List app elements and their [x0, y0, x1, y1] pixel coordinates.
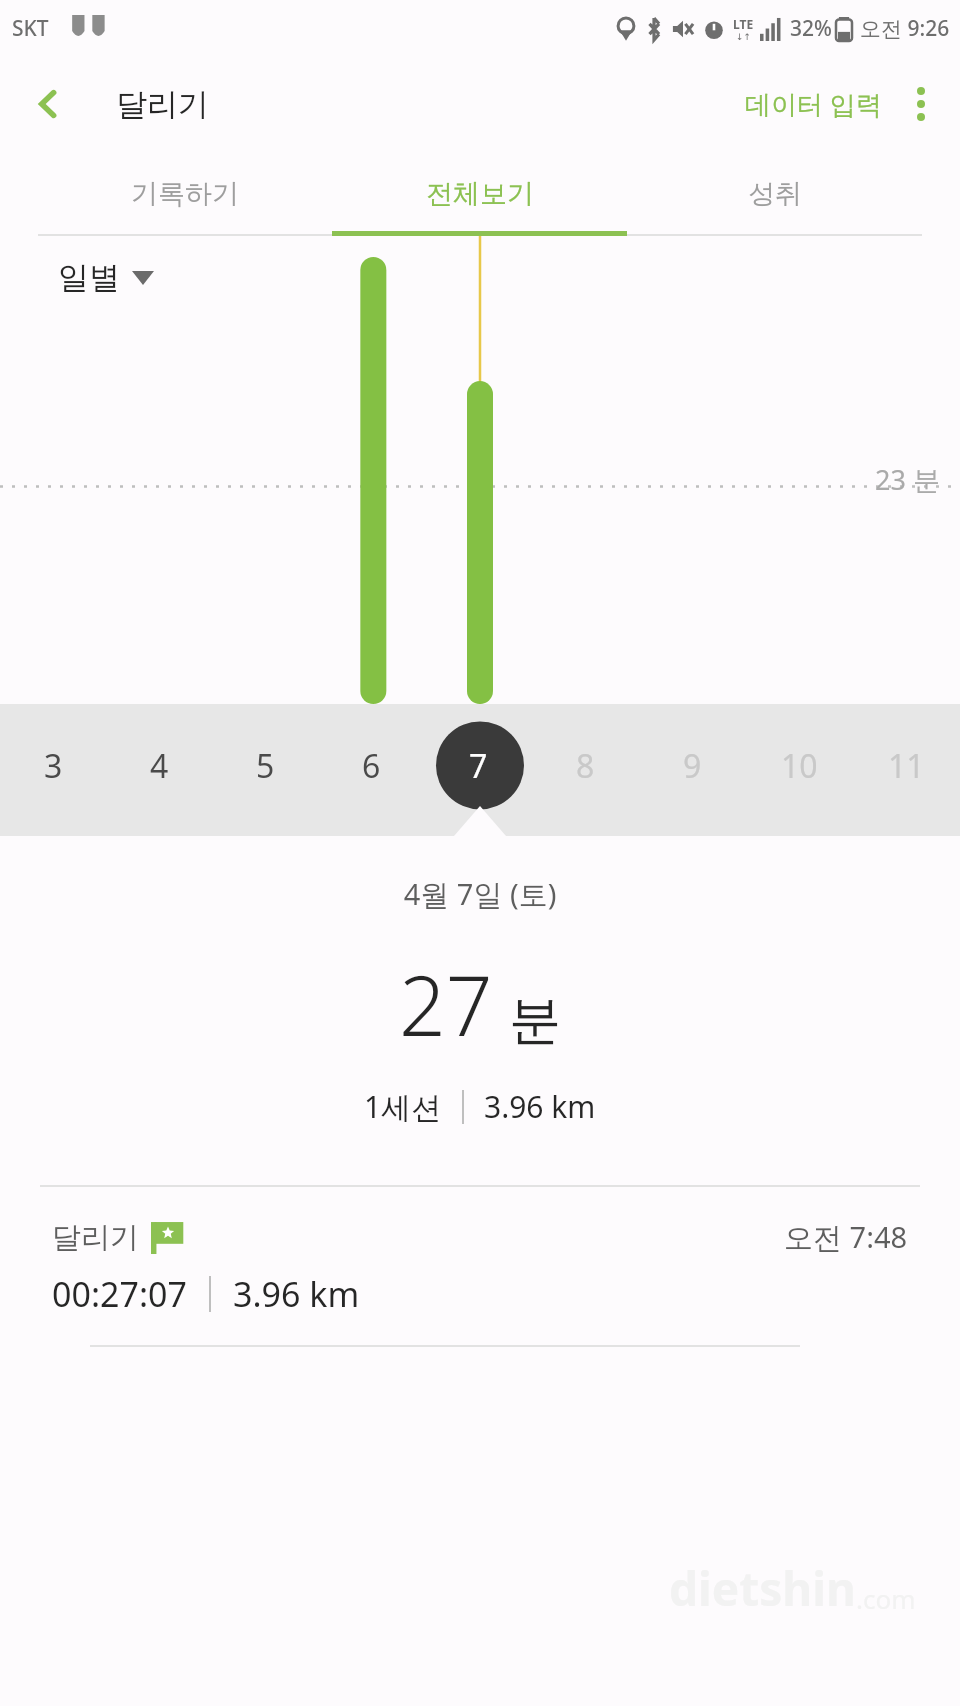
staticText: 10	[781, 744, 818, 788]
button[interactable]: 5	[212, 704, 318, 836]
staticText: 23 분	[875, 461, 940, 498]
staticText: 32%	[790, 14, 832, 43]
staticText: 달리기	[116, 85, 209, 124]
button[interactable]: 기록하기	[38, 152, 332, 236]
staticText: 3.96 km	[233, 1271, 360, 1317]
staticText: 데이터 입력	[745, 86, 882, 122]
button[interactable]: 4	[106, 704, 212, 836]
button[interactable]: 7	[425, 704, 532, 836]
button[interactable]: 데이터 입력	[735, 74, 892, 134]
staticText: 4월 7일 (토)	[0, 874, 960, 914]
staticText: 3.96 km	[484, 1086, 596, 1127]
button[interactable]: 달리기	[0, 1187, 960, 1347]
button[interactable]: 성취	[627, 152, 922, 236]
staticText: 오전 7:48	[784, 1217, 908, 1257]
staticText: 달리기	[52, 1219, 139, 1256]
button[interactable]: 6	[318, 704, 425, 836]
button[interactable]: 8	[532, 704, 639, 836]
button[interactable]: Back	[22, 77, 76, 131]
staticText: 3	[44, 744, 63, 788]
button[interactable]: More options	[892, 75, 950, 133]
staticText: 5	[256, 744, 275, 788]
staticText: 1세션	[364, 1086, 442, 1127]
staticText: 7	[469, 744, 488, 788]
button[interactable]: 9	[639, 704, 746, 836]
button[interactable]: 전체보기	[332, 152, 627, 236]
staticText: 6	[362, 744, 381, 788]
staticText: 분	[509, 988, 561, 1054]
staticText: SKT	[12, 14, 49, 43]
staticText: 오전 9:26	[860, 14, 950, 43]
staticText: 11	[888, 744, 925, 788]
staticText: ↓↑	[736, 32, 752, 42]
staticText: 8	[576, 744, 595, 788]
staticText: .com	[856, 1581, 916, 1616]
staticText: 27	[399, 948, 493, 1060]
staticText: 전체보기	[426, 177, 534, 211]
button[interactable]: 일별	[58, 258, 154, 297]
button[interactable]: 10	[746, 704, 853, 836]
staticText: 9	[683, 744, 702, 788]
staticText: 00:27:07	[52, 1271, 187, 1317]
staticText: 일별	[58, 258, 120, 297]
staticText: 4	[150, 744, 169, 788]
staticText: dietshin	[669, 1557, 856, 1620]
staticText: 성취	[748, 177, 802, 211]
staticText: 기록하기	[131, 177, 239, 211]
button[interactable]: 3	[0, 704, 106, 836]
staticText: LTE	[733, 16, 754, 32]
button[interactable]: 11	[853, 704, 960, 836]
